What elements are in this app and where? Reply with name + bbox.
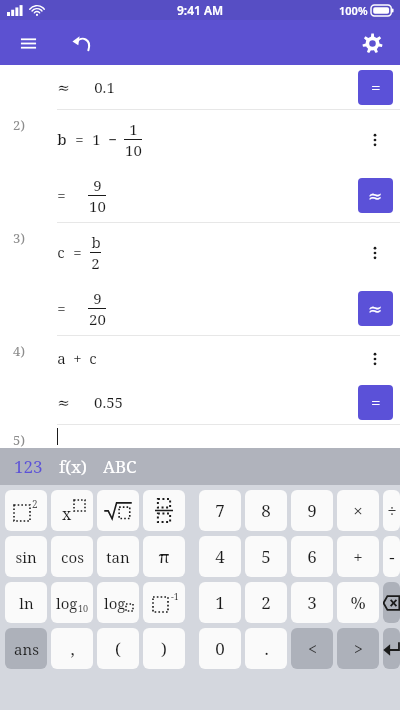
button[interactable]: +	[337, 536, 379, 577]
staticText: 5)	[13, 431, 25, 448]
button[interactable]: ans	[5, 628, 47, 669]
button[interactable]: sin	[5, 536, 47, 577]
staticText: ≈	[368, 186, 383, 206]
button[interactable]: 7	[199, 490, 241, 531]
staticText: 10	[125, 140, 142, 160]
staticText: 9	[93, 175, 102, 195]
button[interactable]: ln	[5, 582, 47, 623]
staticText: =	[57, 185, 66, 205]
staticText: 5	[261, 545, 271, 568]
staticText: π	[158, 545, 170, 568]
button[interactable]: ,	[51, 628, 93, 669]
staticText: )	[161, 637, 167, 660]
staticText: ÷	[387, 499, 397, 522]
button[interactable]: )	[143, 628, 185, 669]
staticText: =	[73, 242, 82, 262]
button[interactable]: inverse	[143, 582, 185, 623]
button[interactable]: More options	[357, 235, 392, 270]
staticText: 3)	[13, 229, 25, 247]
button[interactable]: 123	[14, 448, 43, 485]
staticText: 7	[215, 499, 225, 522]
button[interactable]: ≈	[358, 178, 393, 213]
button[interactable]: tan	[97, 536, 139, 577]
staticText: ln	[19, 593, 34, 613]
staticText: =	[75, 129, 84, 149]
staticText: +	[353, 545, 363, 568]
button[interactable]: ABC	[103, 448, 137, 485]
staticText: 1	[92, 129, 101, 149]
button[interactable]: cos	[51, 536, 93, 577]
button[interactable]: 8	[245, 490, 287, 531]
staticText: tan	[106, 547, 130, 567]
staticText: 4	[215, 545, 225, 568]
staticText: 9:41 AM	[177, 2, 224, 18]
button[interactable]: Backspace	[383, 582, 400, 623]
staticText: ≈	[368, 299, 383, 319]
button[interactable]: log base 10	[51, 582, 93, 623]
staticText: +	[73, 348, 82, 368]
button[interactable]: =	[358, 385, 393, 420]
button[interactable]: log base n	[97, 582, 139, 623]
staticText: -	[389, 545, 395, 568]
staticText: 0.1	[94, 77, 115, 97]
staticText: ×	[353, 499, 363, 522]
button[interactable]: 1	[199, 582, 241, 623]
button[interactable]: More options	[357, 122, 392, 157]
button[interactable]: π	[143, 536, 185, 577]
button[interactable]: -	[383, 536, 400, 577]
button[interactable]: square	[5, 490, 47, 531]
button[interactable]: Settings	[350, 21, 394, 65]
staticText: b	[91, 232, 101, 252]
button[interactable]: 5	[245, 536, 287, 577]
button[interactable]: More options	[357, 341, 392, 376]
staticText: ABC	[103, 455, 137, 478]
staticText: 1	[129, 119, 138, 139]
button[interactable]: Menu	[6, 21, 50, 65]
staticText: 20	[89, 309, 106, 329]
staticText: 1	[215, 591, 225, 614]
button[interactable]: Undo	[60, 21, 104, 65]
staticText: f(x)	[59, 455, 87, 478]
button[interactable]: >	[337, 628, 379, 669]
button[interactable]: 0	[199, 628, 241, 669]
staticText: 2	[32, 497, 38, 511]
staticText: .	[264, 637, 269, 660]
staticText: =	[371, 391, 381, 414]
staticText: 123	[14, 455, 43, 478]
staticText: <	[308, 638, 317, 660]
staticText: ans	[14, 639, 39, 659]
staticText: log	[56, 593, 78, 613]
staticText: −	[108, 129, 117, 149]
button[interactable]: .	[245, 628, 287, 669]
staticText: 9	[307, 499, 317, 522]
staticText: log	[104, 593, 126, 613]
staticText: a	[57, 348, 66, 368]
button[interactable]: 5)	[0, 425, 400, 448]
button[interactable]: 9	[291, 490, 333, 531]
button[interactable]: (	[97, 628, 139, 669]
staticText: =	[371, 76, 381, 99]
staticText: 2	[91, 253, 100, 273]
staticText: sin	[15, 547, 37, 567]
button[interactable]: =	[358, 70, 393, 105]
button[interactable]: ≈	[358, 291, 393, 326]
button[interactable]: 3	[291, 582, 333, 623]
button[interactable]: ÷	[383, 490, 400, 531]
button[interactable]: 6	[291, 536, 333, 577]
button[interactable]: 4	[199, 536, 241, 577]
button[interactable]: <	[291, 628, 333, 669]
button[interactable]: ×	[337, 490, 379, 531]
button[interactable]: %	[337, 582, 379, 623]
button[interactable]: 2	[245, 582, 287, 623]
staticText: 8	[261, 499, 271, 522]
staticText: c	[57, 242, 65, 262]
staticText: =	[57, 298, 66, 318]
button[interactable]: f(x)	[59, 448, 87, 485]
button[interactable]: square root	[97, 490, 139, 531]
staticText: 0.55	[94, 392, 123, 412]
button[interactable]: fraction	[143, 490, 185, 531]
staticText: c	[89, 348, 97, 368]
button[interactable]: Enter	[383, 628, 400, 669]
button[interactable]: power	[51, 490, 93, 531]
staticText: 2)	[13, 116, 25, 134]
